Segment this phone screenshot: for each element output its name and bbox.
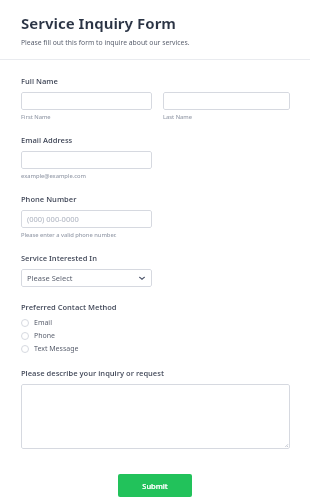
button[interactable]: Phone: [21, 329, 290, 342]
staticText: Text Message: [34, 344, 79, 354]
staticText: Full Name: [21, 76, 58, 86]
staticText: Email Address: [21, 135, 73, 145]
button[interactable]: [163, 92, 290, 110]
staticText: Service Interested In: [21, 253, 97, 263]
button[interactable]: [21, 151, 152, 169]
button[interactable]: (000) 000-0000: [21, 210, 152, 228]
staticText: Please Select: [27, 273, 73, 283]
staticText: Last Name: [163, 113, 193, 121]
button[interactable]: Submit: [118, 474, 192, 497]
button[interactable]: [21, 384, 290, 449]
staticText: Service Inquiry Form: [21, 13, 176, 33]
staticText: Email: [34, 318, 52, 328]
button[interactable]: Please Select: [21, 269, 152, 287]
staticText: Please describe your inquiry or request: [21, 368, 164, 378]
staticText: (000) 000-0000: [27, 214, 79, 224]
staticText: Submit: [142, 481, 168, 491]
staticText: Phone Number: [21, 194, 77, 204]
staticText: example@example.com: [21, 172, 86, 180]
staticText: Preferred Contact Method: [21, 302, 117, 312]
staticText: Please fill out this form to inquire abo…: [21, 38, 190, 47]
button[interactable]: [21, 92, 152, 110]
staticText: First Name: [21, 113, 51, 121]
button[interactable]: Email: [21, 316, 290, 329]
staticText: Please enter a valid phone number.: [21, 231, 117, 239]
staticText: Phone: [34, 331, 56, 341]
button[interactable]: Text Message: [21, 342, 290, 355]
